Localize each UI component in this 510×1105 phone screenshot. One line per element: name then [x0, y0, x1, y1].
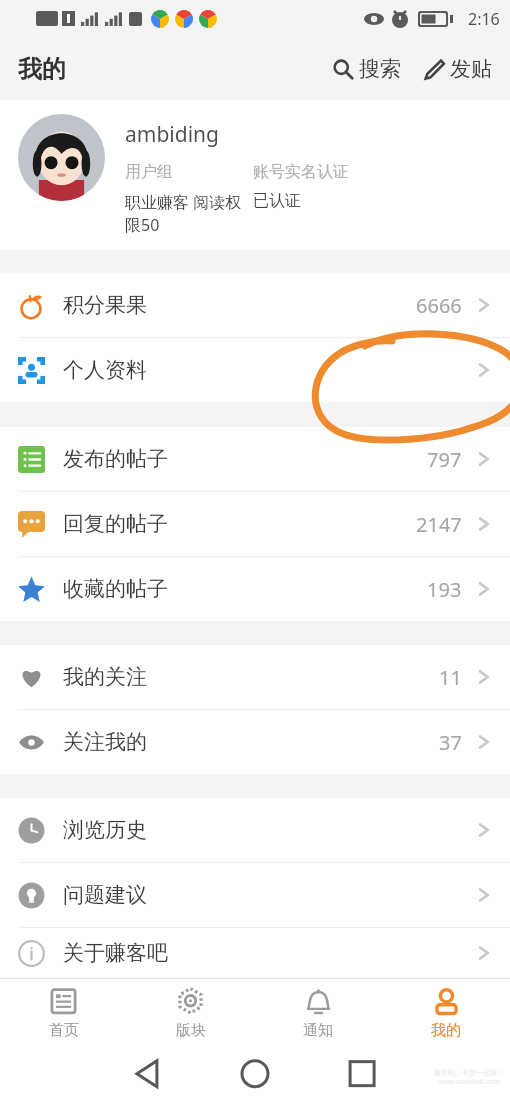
staticText: 已认证 — [253, 191, 301, 211]
staticText: 积分果果 — [63, 292, 416, 318]
staticText: 37 — [439, 729, 462, 756]
button[interactable]: 收藏的帖子 — [0, 557, 510, 621]
staticText: 搜索 — [359, 56, 401, 82]
button[interactable]: 个人资料 — [0, 338, 510, 402]
button[interactable]: 关于赚客吧 — [0, 928, 510, 978]
staticText: 6666 — [416, 292, 462, 319]
staticText: 2:16 — [468, 8, 500, 30]
staticText: 我的 — [18, 54, 66, 84]
staticText: 首页 — [49, 1021, 79, 1040]
staticText: 版块 — [176, 1021, 206, 1040]
staticText: 我的关注 — [63, 664, 439, 690]
staticText: 发贴 — [450, 56, 492, 82]
button[interactable]: 问题建议 — [0, 863, 510, 927]
staticText: 通知 — [303, 1021, 333, 1040]
staticText: 关于赚客吧 — [63, 940, 474, 966]
button[interactable]: 通知 — [254, 979, 382, 1049]
button[interactable]: 浏览历史 — [0, 798, 510, 862]
staticText: 回复的帖子 — [63, 511, 416, 537]
button[interactable]: ambiding — [0, 100, 510, 250]
button[interactable]: 发贴 — [419, 50, 496, 88]
staticText: 发布的帖子 — [63, 446, 427, 472]
button[interactable]: 关注我的 — [0, 710, 510, 774]
button[interactable]: 版块 — [127, 979, 254, 1049]
staticText: 我的 — [431, 1021, 461, 1040]
button[interactable]: 我的关注 — [0, 645, 510, 709]
staticText: 11 — [439, 664, 462, 691]
staticText: 收藏的帖子 — [63, 576, 427, 602]
staticText: 浏览历史 — [63, 817, 474, 843]
staticText: 2147 — [416, 511, 462, 538]
button[interactable]: 积分果果 — [0, 273, 510, 337]
staticText: 797 — [427, 446, 462, 473]
button[interactable]: 首页 — [0, 979, 127, 1049]
button[interactable]: 发布的帖子 — [0, 427, 510, 491]
staticText: 赚客吧，有货一起撸！ www.zuanke8.com — [434, 1068, 504, 1087]
staticText: 用户组 — [125, 162, 253, 182]
button[interactable]: 我的 — [382, 979, 510, 1049]
staticText: 账号实名认证 — [253, 162, 349, 182]
staticText: 个人资料 — [63, 357, 474, 383]
staticText: 关注我的 — [63, 729, 439, 755]
staticText: 问题建议 — [63, 882, 474, 908]
staticText: ambiding — [125, 120, 219, 149]
button[interactable]: 回复的帖子 — [0, 492, 510, 556]
staticText: 193 — [427, 576, 462, 603]
staticText: 职业赚客 阅读权限50 — [125, 191, 253, 236]
button[interactable]: 搜索 — [328, 50, 405, 88]
